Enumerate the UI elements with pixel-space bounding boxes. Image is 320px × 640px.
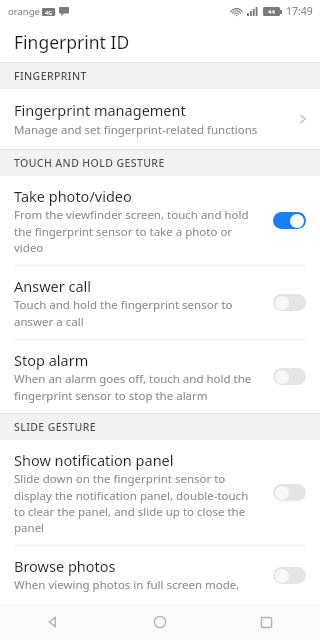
staticText: When viewing photos in full screen mode,… [14, 577, 262, 594]
other: Open fingerprint management [296, 112, 310, 126]
staticText: Take photo/video [14, 186, 132, 206]
button[interactable]: Recent apps [213, 604, 320, 640]
staticText: 17:49 [286, 4, 313, 18]
button[interactable]: Toggle off [273, 567, 306, 584]
staticText: SLIDE GESTURE [14, 420, 96, 434]
button[interactable]: Home [106, 604, 213, 640]
button[interactable]: Take photo/video [0, 176, 320, 265]
button[interactable]: Browse photos [0, 546, 320, 604]
staticText: Show notification panel [14, 450, 174, 470]
staticText: 44 [268, 8, 275, 16]
button[interactable]: Show notification panel [0, 440, 320, 545]
staticText: 4G [45, 9, 53, 16]
staticText: From the viewfinder screen, touch and ho… [14, 207, 263, 255]
button[interactable]: Fingerprint management [0, 89, 320, 149]
staticText: TOUCH AND HOLD GESTURE [14, 156, 165, 170]
staticText: Fingerprint ID [14, 30, 130, 54]
staticText: Manage and set fingerprint-related funct… [14, 122, 258, 138]
staticText: When an alarm goes off, touch and hold t… [14, 371, 252, 403]
staticText: Answer call [14, 276, 92, 296]
staticText: Browse photos [14, 556, 116, 576]
button[interactable]: Toggle off [273, 368, 306, 385]
button[interactable]: Toggle off [273, 294, 306, 311]
button[interactable]: Answer call [0, 266, 320, 339]
button[interactable]: Toggle on [273, 212, 306, 229]
staticText: Stop alarm [14, 350, 89, 370]
staticText: Fingerprint management [14, 100, 186, 120]
staticText: orange [8, 5, 40, 18]
button[interactable]: Back [0, 604, 106, 640]
button[interactable]: Toggle off [273, 484, 306, 501]
staticText: FINGERPRINT [14, 69, 87, 83]
button[interactable]: Stop alarm [0, 340, 320, 413]
staticText: Touch and hold the fingerprint sensor to… [14, 297, 233, 329]
staticText: Slide down on the fingerprint sensor to … [14, 471, 249, 535]
